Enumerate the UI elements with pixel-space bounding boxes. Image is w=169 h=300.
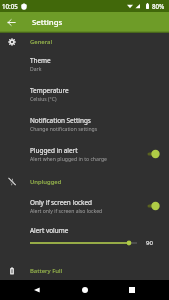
staticText: Dark — [30, 66, 42, 73]
button[interactable]: Toggle — [147, 200, 160, 212]
button[interactable]: Back — [0, 12, 22, 33]
staticText: Celsius (°C) — [30, 96, 57, 103]
staticText: 80% — [152, 2, 165, 10]
staticText: Unplugged — [30, 178, 62, 186]
button[interactable]: Plugged in alert — [0, 141, 169, 171]
button[interactable]: Only if screen locked — [0, 193, 169, 223]
button[interactable]: Notification Settings — [0, 111, 169, 141]
staticText: Notification Settings — [30, 116, 91, 125]
staticText: Only if screen locked — [30, 198, 93, 207]
staticText: 90 — [146, 239, 153, 247]
button[interactable]: Home — [75, 280, 95, 300]
staticText: Change notification settings — [30, 126, 98, 133]
staticText: Settings — [32, 17, 63, 28]
staticText: General — [30, 38, 53, 46]
button[interactable]: Recents — [122, 280, 142, 300]
staticText: Plugged in alert — [30, 146, 78, 155]
button[interactable]: Theme — [0, 51, 169, 81]
button[interactable]: Alert volume slider — [30, 239, 137, 247]
staticText: Alert only if screen also locked — [30, 208, 103, 215]
staticText: Theme — [30, 56, 51, 65]
staticText: Alert when plugged in to charge — [30, 156, 107, 163]
button[interactable]: Toggle — [147, 148, 160, 160]
staticText: 10:05 — [2, 2, 18, 10]
staticText: Alert volume — [30, 226, 69, 235]
button[interactable]: Back — [27, 280, 47, 300]
staticText: Battery Full — [30, 267, 63, 275]
staticText: Temperature — [30, 86, 69, 95]
button[interactable]: Temperature — [0, 81, 169, 111]
